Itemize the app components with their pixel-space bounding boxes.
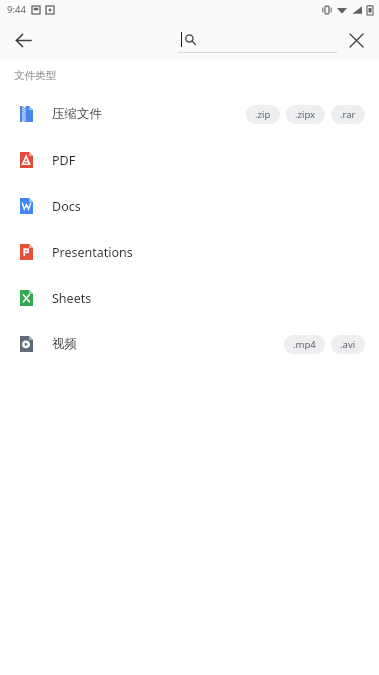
button[interactable]: Sheets [0,275,379,321]
staticText: .rar [340,108,356,121]
button[interactable]: 视频 [0,321,379,367]
button[interactable]: Back [6,23,40,57]
staticText: .avi [340,338,356,351]
button[interactable]: PDF [0,137,379,183]
staticText: 压缩文件 [52,106,102,122]
button[interactable]: .zipx [286,105,325,124]
staticText: 文件类型 [14,69,56,82]
staticText: 9:44 [7,3,26,16]
staticText: Presentations [52,244,133,261]
button[interactable]: Docs [0,183,379,229]
button[interactable]: .avi [331,335,365,354]
staticText: PDF [52,152,76,169]
button[interactable] [178,19,337,60]
staticText: Docs [52,198,81,215]
staticText: .zip [255,108,271,121]
staticText: .zipx [295,108,316,121]
staticText: 视频 [52,336,77,352]
button[interactable]: .mp4 [284,335,325,354]
button[interactable]: .zip [246,105,280,124]
staticText: Sheets [52,290,92,307]
button[interactable]: Clear search [339,23,373,57]
button[interactable]: .rar [331,105,365,124]
button[interactable]: 压缩文件 [0,91,379,137]
staticText: .mp4 [293,338,316,351]
button[interactable]: Presentations [0,229,379,275]
